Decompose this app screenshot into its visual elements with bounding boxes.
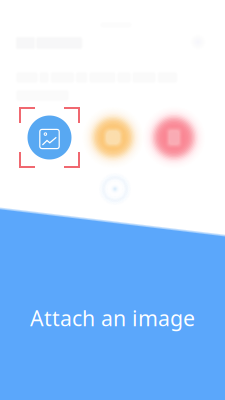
button[interactable]: Attach an image [27,115,71,159]
staticText: Attach an image [30,304,195,332]
